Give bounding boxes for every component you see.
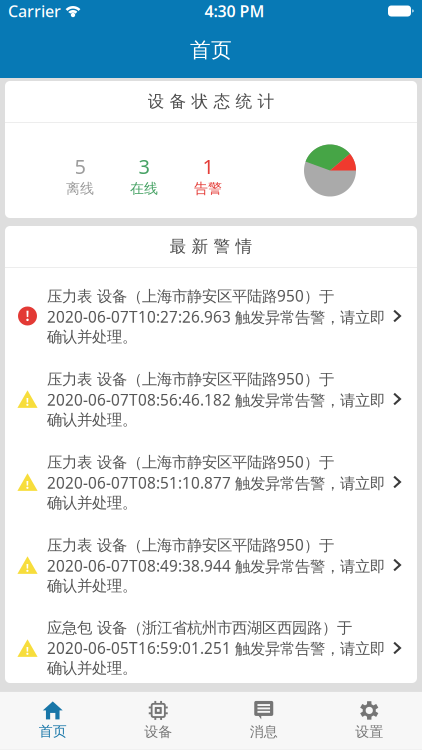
staticText: Carrier [8, 0, 61, 22]
staticText: 1 [202, 153, 213, 180]
staticText: 确认并处理。 [47, 576, 137, 596]
staticText: 2020-06-05T16:59:01.251 触发异常告警，请立即 [47, 637, 385, 658]
staticText: 确认并处理。 [47, 493, 137, 513]
staticText: 确认并处理。 [47, 658, 137, 678]
button[interactable]: 压力表 设备（上海市静安区平陆路950）于 [5, 434, 417, 517]
staticText: 设置 [355, 723, 383, 740]
staticText: 确认并处理。 [47, 327, 137, 347]
staticText: 首页 [190, 37, 232, 63]
staticText: 应急包 设备（浙江省杭州市西湖区西园路）于 [47, 618, 352, 637]
staticText: 压力表 设备（上海市静安区平陆路950）于 [47, 285, 334, 306]
staticText: 告警 [194, 180, 222, 197]
staticText: 最 新 警 情 [169, 236, 252, 257]
staticText: 首页 [39, 722, 67, 740]
staticText: 消息 [250, 723, 278, 740]
staticText: 设备 [144, 723, 172, 740]
staticText: 3 [138, 153, 149, 180]
staticText: 2020-06-07T08:49:38.944 触发异常告警，请立即 [47, 555, 385, 576]
button[interactable]: 压力表 设备（上海市静安区平陆路950）于 [5, 517, 417, 600]
staticText: 5 [74, 153, 85, 180]
button[interactable]: 应急包 设备（浙江省杭州市西湖区西园路）于 [5, 600, 417, 683]
button[interactable]: 压力表 设备（上海市静安区平陆路950）于 [5, 268, 417, 351]
staticText: 压力表 设备（上海市静安区平陆路950）于 [47, 368, 334, 389]
staticText: 4:30 PM [204, 0, 264, 22]
staticText: 压力表 设备（上海市静安区平陆路950）于 [47, 451, 334, 472]
staticText: 离线 [66, 180, 94, 197]
button[interactable]: 首页 [0, 692, 105, 750]
staticText: 2020-06-07T10:27:26.963 触发异常告警，请立即 [47, 306, 385, 327]
button[interactable]: 设置 [316, 692, 422, 750]
staticText: 在线 [130, 180, 158, 197]
staticText: 2020-06-07T08:56:46.182 触发异常告警，请立即 [47, 389, 385, 410]
staticText: 设 备 状 态 统 计 [147, 91, 274, 112]
button[interactable]: 设备 [105, 692, 211, 750]
button[interactable]: 压力表 设备（上海市静安区平陆路950）于 [5, 351, 417, 434]
staticText: 2020-06-07T08:51:10.877 触发异常告警，请立即 [47, 472, 385, 493]
staticText: 压力表 设备（上海市静安区平陆路950）于 [47, 534, 334, 555]
staticText: 确认并处理。 [47, 410, 137, 430]
button[interactable]: 消息 [211, 692, 316, 750]
